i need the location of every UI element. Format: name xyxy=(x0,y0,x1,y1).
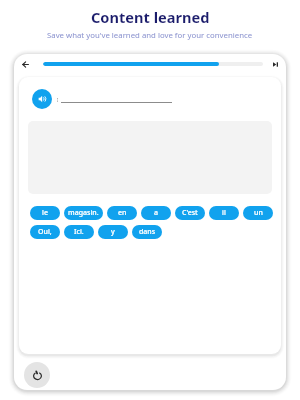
button[interactable]: il xyxy=(209,206,239,220)
button[interactable]: le xyxy=(30,206,60,220)
button[interactable]: dans xyxy=(132,225,162,239)
button[interactable]: Play audio xyxy=(32,89,52,109)
staticText: y xyxy=(111,227,115,237)
staticText: le xyxy=(42,208,48,218)
button[interactable]: C'est xyxy=(175,206,205,220)
button[interactable]: en xyxy=(107,206,137,220)
button[interactable]: Oui, xyxy=(30,225,60,239)
staticText: Oui, xyxy=(38,227,52,237)
staticText: Save what you've learned and love for yo… xyxy=(47,30,253,41)
staticText: dans xyxy=(139,227,156,237)
button[interactable]: magasin. xyxy=(64,206,103,220)
staticText: Ici. xyxy=(74,227,84,237)
button[interactable]: Ici. xyxy=(64,225,94,239)
staticText: un xyxy=(254,208,263,218)
button[interactable]: un xyxy=(243,206,273,220)
button[interactable]: Reset xyxy=(24,362,50,388)
staticText: en xyxy=(118,208,127,218)
staticText: magasin. xyxy=(68,208,99,218)
button[interactable]: Back xyxy=(17,56,33,72)
staticText: il xyxy=(222,208,226,218)
button[interactable]: a xyxy=(141,206,171,220)
button[interactable]: y xyxy=(98,225,128,239)
staticText: Content learned xyxy=(91,7,210,27)
button[interactable]: Skip xyxy=(268,57,282,71)
staticText: C'est xyxy=(182,208,198,218)
staticText: a xyxy=(154,208,159,218)
